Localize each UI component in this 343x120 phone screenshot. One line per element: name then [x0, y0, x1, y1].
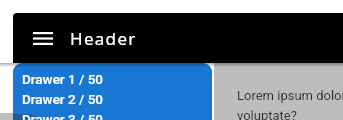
staticText: Header: [70, 27, 137, 50]
staticText: Lorem ipsum dolor sit amet,: [237, 88, 343, 103]
staticText: Drawer 3 / 50: [22, 111, 103, 120]
staticText: Drawer 1 / 50: [22, 71, 103, 87]
button[interactable]: Drawer 2 / 50: [13, 89, 212, 109]
button[interactable]: Open navigation menu: [29, 24, 57, 52]
button[interactable]: Drawer 1 / 50: [13, 69, 212, 89]
staticText: voluptate?: [237, 108, 297, 120]
staticText: Drawer 2 / 50: [22, 91, 103, 107]
button[interactable]: Drawer 3 / 50: [13, 109, 212, 120]
